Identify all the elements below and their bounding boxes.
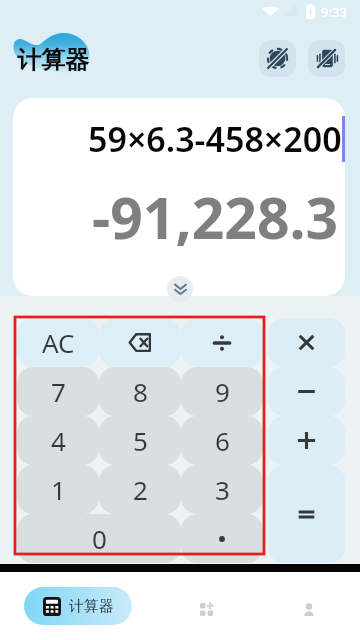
button[interactable]: 2 <box>99 465 181 514</box>
button[interactable]: 1 <box>17 465 99 514</box>
staticText: 0 <box>92 521 107 556</box>
staticText: 5 <box>133 423 148 458</box>
button[interactable]: 6 <box>181 416 263 465</box>
button[interactable]: Divide <box>181 318 263 367</box>
other: Decimal point <box>217 534 227 544</box>
button[interactable]: 计算器 <box>24 587 132 625</box>
other: Backspace <box>128 333 152 352</box>
staticText: -91,228.3 <box>92 178 339 256</box>
button[interactable]: Decimal point <box>181 514 263 563</box>
button[interactable]: Vibration off <box>308 40 345 77</box>
staticText: 59×6.3-458×200 <box>88 116 342 162</box>
button[interactable]: 0 <box>17 514 181 563</box>
button[interactable]: Mute sound <box>259 40 296 77</box>
staticText: 2 <box>133 472 148 507</box>
button[interactable]: Tools <box>190 593 223 626</box>
other: Divide <box>214 335 230 351</box>
staticText: 6 <box>215 423 230 458</box>
button[interactable]: Subtract <box>268 367 345 416</box>
button[interactable]: Expand history <box>167 276 193 302</box>
button[interactable]: Equals <box>268 465 345 563</box>
staticText: 4 <box>51 423 66 458</box>
button[interactable]: 3 <box>181 465 263 514</box>
staticText: 9 <box>215 374 230 409</box>
button[interactable]: Profile <box>292 593 325 626</box>
button[interactable]: Multiply <box>268 318 345 367</box>
staticText: 计算器 <box>69 597 114 616</box>
button[interactable]: 5 <box>99 416 181 465</box>
button[interactable]: 7 <box>17 367 99 416</box>
staticText: 9:33 <box>321 3 347 21</box>
button[interactable]: Add <box>268 416 345 465</box>
staticText: 7 <box>51 374 66 409</box>
button[interactable]: 9 <box>181 367 263 416</box>
button[interactable]: Backspace <box>99 318 181 367</box>
staticText: 3 <box>215 472 230 507</box>
button[interactable]: AC <box>17 318 99 367</box>
staticText: 8 <box>133 374 148 409</box>
button[interactable]: 4 <box>17 416 99 465</box>
staticText: AC <box>42 325 75 360</box>
staticText: 计算器 <box>17 45 89 75</box>
button[interactable]: 8 <box>99 367 181 416</box>
staticText: 1 <box>51 472 66 507</box>
